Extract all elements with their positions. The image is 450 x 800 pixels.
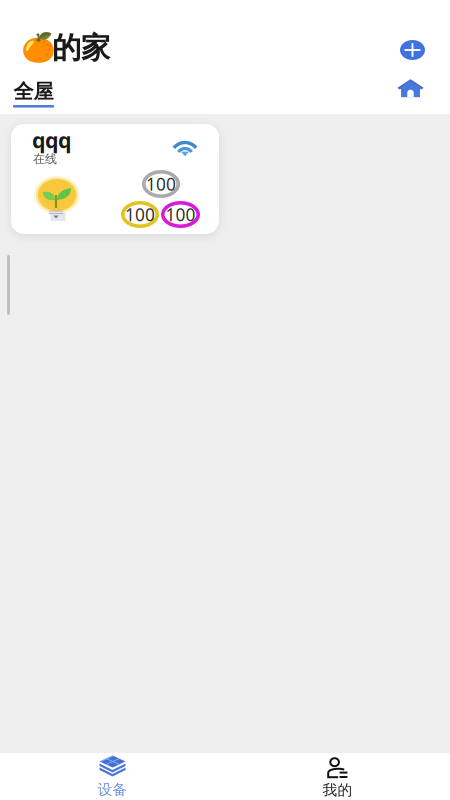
staticText: 的家 [52, 30, 110, 66]
button[interactable]: qqq [11, 124, 219, 234]
button[interactable]: Add [400, 40, 425, 60]
staticText: 我的 [322, 781, 352, 799]
staticText: 🍊 [21, 31, 56, 63]
button[interactable]: 我的 [225, 753, 450, 800]
staticText: 全屋 [13, 79, 53, 104]
button[interactable]: 设备 [0, 753, 225, 800]
staticText: qqq [32, 126, 71, 154]
staticText: 100 [125, 203, 155, 226]
staticText: 100 [165, 203, 195, 226]
button[interactable]: 全屋 [13, 78, 54, 107]
button[interactable]: Home [397, 79, 424, 98]
staticText: 设备 [97, 780, 127, 798]
staticText: 在线 [33, 152, 57, 166]
staticText: 100 [146, 172, 176, 195]
